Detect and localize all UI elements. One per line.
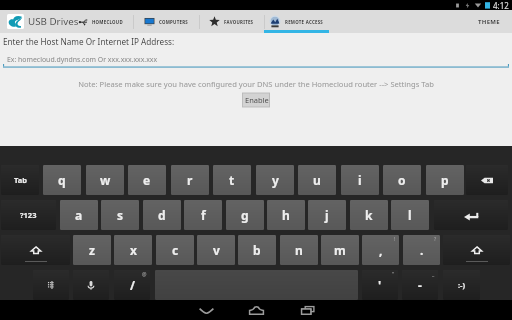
button[interactable]: / — [114, 270, 150, 300]
staticText: z — [89, 242, 95, 258]
button[interactable]: l — [391, 200, 429, 230]
staticText: :-) — [458, 280, 466, 290]
button[interactable]: ?123 — [1, 200, 56, 230]
staticText: e — [143, 172, 151, 188]
staticText: THEME — [478, 18, 500, 26]
button[interactable]: - — [402, 270, 438, 300]
button[interactable]: a — [60, 200, 98, 230]
button[interactable]: f — [184, 200, 222, 230]
button[interactable]: d — [143, 200, 181, 230]
button[interactable]: Shift — [443, 235, 510, 265]
staticText: ! — [394, 236, 396, 243]
button[interactable]: . — [403, 235, 440, 265]
button[interactable]: o — [383, 165, 421, 195]
staticText: b — [253, 242, 261, 258]
button[interactable]: Voice input — [73, 270, 109, 300]
staticText: u — [313, 172, 321, 188]
staticText: " — [392, 271, 395, 278]
button[interactable]: FAVOURITES — [199, 10, 264, 33]
button[interactable]: Hide keyboard — [182, 300, 230, 320]
staticText: v — [213, 242, 220, 258]
staticText: s — [117, 207, 124, 223]
staticText: @ — [142, 271, 147, 278]
button[interactable]: COMPUTERS — [133, 10, 198, 33]
staticText: m — [334, 242, 346, 258]
other: Shift — [31, 246, 41, 255]
staticText: h — [282, 207, 290, 223]
staticText: REMOTE ACCESS — [285, 19, 324, 25]
staticText: Enter the Host Name Or Internet IP Addre… — [3, 36, 175, 47]
button[interactable]: Home — [232, 300, 280, 320]
button[interactable]: Backspace — [466, 165, 508, 195]
button[interactable]: t — [213, 165, 251, 195]
staticText: , — [379, 242, 383, 258]
staticText: Ex: homecloud.dyndns.com Or xxx.xxx.xxx.… — [7, 55, 158, 64]
staticText: COMPUTERS — [159, 19, 188, 25]
staticText: w — [100, 172, 111, 188]
button[interactable]: h — [267, 200, 305, 230]
button[interactable]: Recent apps — [284, 300, 332, 320]
button[interactable]: p — [426, 165, 464, 195]
staticText: ?123 — [20, 210, 37, 220]
button[interactable]: b — [238, 235, 276, 265]
button[interactable]: z — [73, 235, 111, 265]
button[interactable]: THEME — [470, 10, 508, 33]
button[interactable]: j — [308, 200, 346, 230]
staticText: l — [408, 207, 412, 223]
button[interactable]: Enter — [434, 200, 508, 230]
button[interactable]: v — [197, 235, 235, 265]
button[interactable]: r — [171, 165, 209, 195]
other: Enter — [463, 210, 480, 221]
button[interactable]: n — [280, 235, 318, 265]
button[interactable]: y — [256, 165, 294, 195]
staticText: j — [325, 207, 329, 223]
button[interactable]: e — [128, 165, 166, 195]
other: Switch keyboard — [47, 281, 55, 289]
staticText: a — [75, 207, 83, 223]
other: Shift — [472, 246, 482, 255]
staticText: ' — [378, 277, 382, 293]
staticText: n — [295, 242, 303, 258]
button[interactable]: k — [350, 200, 388, 230]
staticText: Tab — [14, 175, 27, 185]
staticText: y — [272, 172, 279, 188]
staticText: o — [398, 172, 406, 188]
button[interactable]: Tab — [1, 165, 39, 195]
button[interactable]: i — [341, 165, 379, 195]
staticText: ? — [434, 236, 437, 243]
button[interactable]: x — [114, 235, 152, 265]
staticText: i — [358, 172, 362, 188]
button[interactable]: g — [226, 200, 264, 230]
button[interactable]: Switch keyboard — [33, 270, 69, 300]
button[interactable]: HOMECLOUD — [68, 10, 133, 33]
staticText: p — [441, 172, 449, 188]
staticText: t — [229, 172, 235, 188]
button[interactable]: q — [43, 165, 81, 195]
staticText: x — [130, 242, 137, 258]
staticText: HOMECLOUD — [92, 19, 123, 25]
staticText: - — [418, 277, 422, 293]
button[interactable]: Shift — [1, 235, 70, 265]
staticText: d — [158, 207, 166, 223]
staticText: g — [241, 207, 249, 223]
button[interactable]: ' — [362, 270, 398, 300]
button[interactable]: u — [298, 165, 336, 195]
button[interactable]: m — [321, 235, 359, 265]
button[interactable]: s — [101, 200, 139, 230]
button[interactable]: Enable — [243, 93, 270, 107]
staticText: 4:12 — [493, 0, 509, 10]
other: Voice input — [87, 280, 95, 291]
staticText: USB Drives — [28, 15, 79, 28]
button[interactable]: c — [156, 235, 194, 265]
staticText: k — [365, 207, 373, 223]
staticText: _ — [432, 271, 435, 278]
staticText: Note: Please make sure you have configur… — [0, 79, 512, 89]
button[interactable]: w — [86, 165, 124, 195]
staticText: / — [130, 277, 135, 293]
staticText: . — [420, 242, 424, 258]
button[interactable]: REMOTE ACCESS — [264, 10, 329, 33]
staticText: Enable — [245, 95, 269, 105]
button[interactable]: , — [362, 235, 399, 265]
button[interactable]: :-) — [443, 270, 480, 300]
